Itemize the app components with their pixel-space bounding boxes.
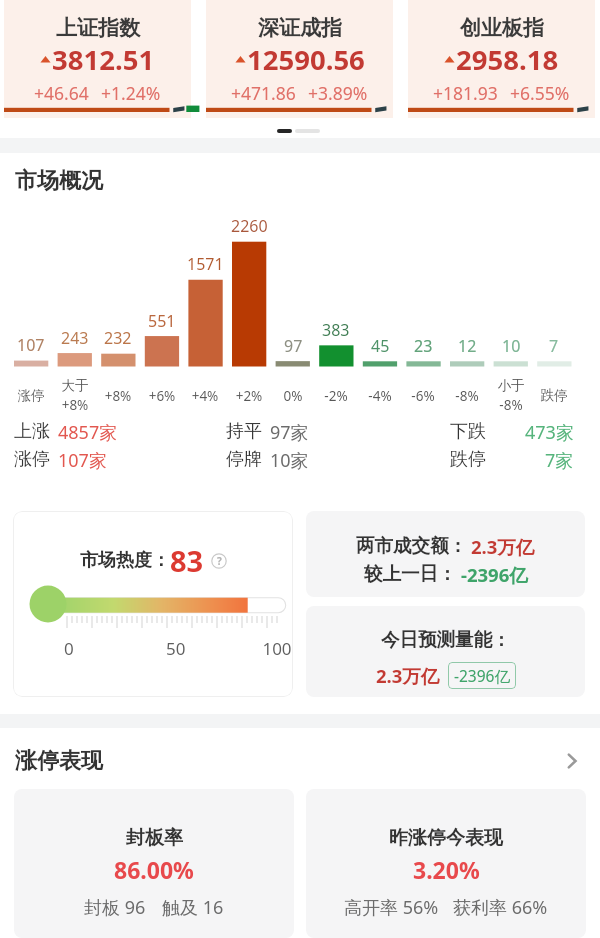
staticText: +1.24% — [101, 81, 161, 105]
staticText: 深证成指 — [258, 15, 342, 41]
staticText: 持平 — [226, 420, 262, 443]
staticText: 107 — [17, 334, 45, 356]
staticText: 232 — [104, 327, 132, 349]
staticText: 2.3万亿 — [376, 663, 440, 688]
staticText: 243 — [61, 327, 89, 349]
staticText: 封板率 — [126, 826, 183, 850]
staticText: 7家 — [545, 448, 574, 473]
staticText: 封板 96 — [84, 895, 146, 920]
staticText: 45 — [371, 335, 390, 357]
staticText: -2% — [312, 387, 360, 405]
staticText: +3.89% — [308, 81, 368, 105]
button[interactable]: 昨涨停今表现 — [306, 789, 586, 938]
staticText: 0 — [64, 637, 74, 660]
staticText: +6% — [138, 387, 186, 405]
staticText: 23 — [414, 335, 433, 357]
staticText: 4857家 — [58, 420, 118, 445]
staticText: 上涨 — [14, 420, 50, 443]
staticText: 较上一日： — [364, 562, 457, 585]
staticText: 上证指数 — [56, 15, 140, 41]
staticText: 跌停 — [530, 387, 578, 404]
staticText: 3.20% — [413, 854, 480, 885]
staticText: 50 — [166, 637, 186, 660]
staticText: 0% — [269, 387, 317, 405]
staticText: 涨停 — [7, 387, 55, 404]
staticText: +471.86 — [231, 81, 296, 105]
staticText: 97 — [284, 335, 303, 357]
staticText: 10家 — [270, 448, 309, 473]
staticText: 市场概况 — [15, 167, 103, 195]
staticText: 551 — [148, 310, 176, 332]
staticText: -4% — [356, 387, 404, 405]
staticText: -6% — [399, 387, 447, 405]
staticText: 触及 16 — [162, 895, 224, 920]
staticText: 12 — [458, 335, 477, 357]
staticText: -2396亿 — [454, 665, 510, 686]
staticText: 86.00% — [114, 854, 194, 885]
button[interactable]: 封板率 — [14, 789, 294, 938]
staticText: 100 — [257, 637, 293, 660]
staticText: 107家 — [58, 448, 107, 473]
button[interactable]: 市场热度： — [13, 511, 293, 697]
staticText: 停牌 — [226, 448, 262, 471]
staticText: 高开率 56% — [344, 895, 439, 920]
other: More limit-up performance — [564, 753, 580, 769]
staticText: 2260 — [231, 215, 268, 237]
staticText: +181.93 — [433, 81, 498, 105]
button[interactable]: 两市成交额： — [306, 511, 585, 597]
staticText: 3812.51 — [52, 41, 155, 78]
staticText: 大于 +8% — [51, 377, 99, 413]
staticText: +8% — [94, 387, 142, 405]
staticText: 7 — [549, 335, 559, 357]
staticText: 创业板指 — [460, 15, 544, 41]
staticText: 获利率 66% — [453, 895, 548, 920]
staticText: 83 — [170, 541, 204, 580]
staticText: 涨停表现 — [15, 747, 103, 775]
staticText: 1571 — [187, 253, 224, 275]
button[interactable]: 创业板指 — [408, 0, 595, 118]
staticText: +6.55% — [510, 81, 570, 105]
staticText: -8% — [443, 387, 491, 405]
button[interactable]: 深证成指 — [206, 0, 393, 118]
button[interactable]: 今日预测量能： — [306, 606, 585, 697]
staticText: 跌停 — [450, 448, 486, 471]
staticText: 12590.56 — [247, 41, 365, 78]
staticText: 涨停 — [14, 448, 50, 471]
staticText: +46.64 — [34, 81, 89, 105]
staticText: -2396亿 — [461, 562, 528, 587]
staticText: 昨涨停今表现 — [389, 826, 503, 850]
button[interactable]: 涨停表现 — [0, 738, 600, 784]
staticText: +4% — [181, 387, 229, 405]
staticText: 473家 — [525, 420, 574, 445]
staticText: +2% — [225, 387, 273, 405]
button[interactable]: 上证指数 — [4, 0, 191, 118]
staticText: 97家 — [270, 420, 309, 445]
staticText: 市场热度： — [80, 549, 170, 572]
staticText: 2.3万亿 — [471, 534, 535, 559]
staticText: 10 — [502, 335, 521, 357]
button[interactable]: Help — [211, 553, 227, 569]
staticText: 2958.18 — [456, 41, 559, 78]
staticText: 下跌 — [450, 420, 486, 443]
staticText: ? — [217, 554, 222, 568]
staticText: 小于 -8% — [487, 377, 535, 413]
staticText: 今日预测量能： — [381, 628, 511, 651]
staticText: 两市成交额： — [356, 534, 467, 557]
staticText: 383 — [322, 319, 350, 341]
